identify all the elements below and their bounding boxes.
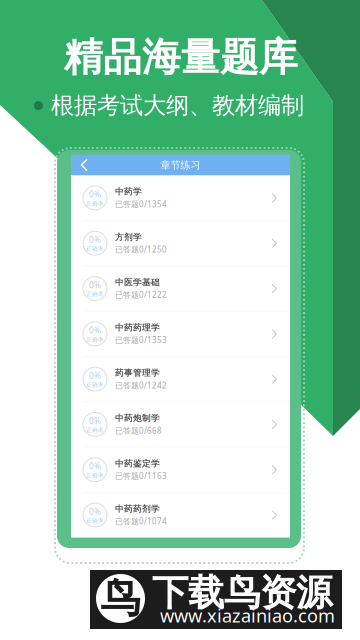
staticText: 已答题0/668	[115, 425, 162, 436]
staticText: 正确率	[86, 245, 104, 252]
staticText: 精品海量题库	[64, 33, 298, 82]
button[interactable]: 0%	[71, 312, 290, 356]
staticText: 正确率	[86, 472, 104, 479]
staticText: 0%	[89, 506, 101, 517]
staticText: 中药炮制学	[115, 413, 160, 424]
staticText: 中医学基础	[115, 277, 160, 288]
staticText: 已答题0/1250	[115, 244, 167, 255]
staticText: 已答题0/1163	[115, 470, 167, 481]
staticText: 0%	[89, 460, 101, 472]
staticText: 0%	[89, 370, 101, 381]
staticText: 已答题0/1242	[115, 380, 167, 391]
staticText: 根据考试大纲、教材编制	[51, 91, 304, 120]
button[interactable]: 0%	[71, 221, 290, 266]
staticText: 中药药剂学	[115, 503, 160, 514]
button[interactable]: 0%	[71, 493, 290, 537]
staticText: 中药学	[115, 186, 142, 197]
staticText: 已答题0/1354	[115, 199, 167, 209]
staticText: 正确率	[86, 336, 104, 343]
staticText: 下载鸟资源	[152, 570, 332, 616]
staticText: 0%	[89, 415, 101, 426]
staticText: 中药鉴定学	[115, 458, 160, 469]
button[interactable]: 返回	[71, 155, 94, 176]
staticText: 正确率	[86, 291, 104, 298]
staticText: 中药药理学	[115, 322, 160, 333]
staticText: 已答题0/1353	[115, 334, 167, 345]
staticText: 药事管理学	[115, 368, 160, 378]
staticText: 正确率	[86, 381, 104, 388]
staticText: 正确率	[86, 426, 104, 434]
staticText: 已答题0/1222	[115, 289, 167, 300]
staticText: 0%	[89, 325, 101, 336]
staticText: 0%	[89, 189, 101, 200]
button[interactable]: 0%	[71, 357, 290, 401]
staticText: 0%	[89, 234, 101, 245]
staticText: 已答题0/1074	[115, 516, 167, 527]
staticText: 正确率	[86, 517, 104, 524]
staticText: 0%	[89, 279, 101, 291]
staticText: 章节练习	[160, 159, 200, 171]
staticText: 方剂学	[115, 232, 142, 242]
staticText: 鸟	[100, 573, 140, 624]
staticText: 正确率	[86, 200, 104, 207]
button[interactable]: 0%	[71, 266, 290, 311]
button[interactable]: 0%	[71, 176, 290, 220]
button[interactable]: 0%	[71, 402, 290, 447]
staticText: www.xiazainiao.com	[160, 603, 335, 628]
button[interactable]: 0%	[71, 447, 290, 492]
